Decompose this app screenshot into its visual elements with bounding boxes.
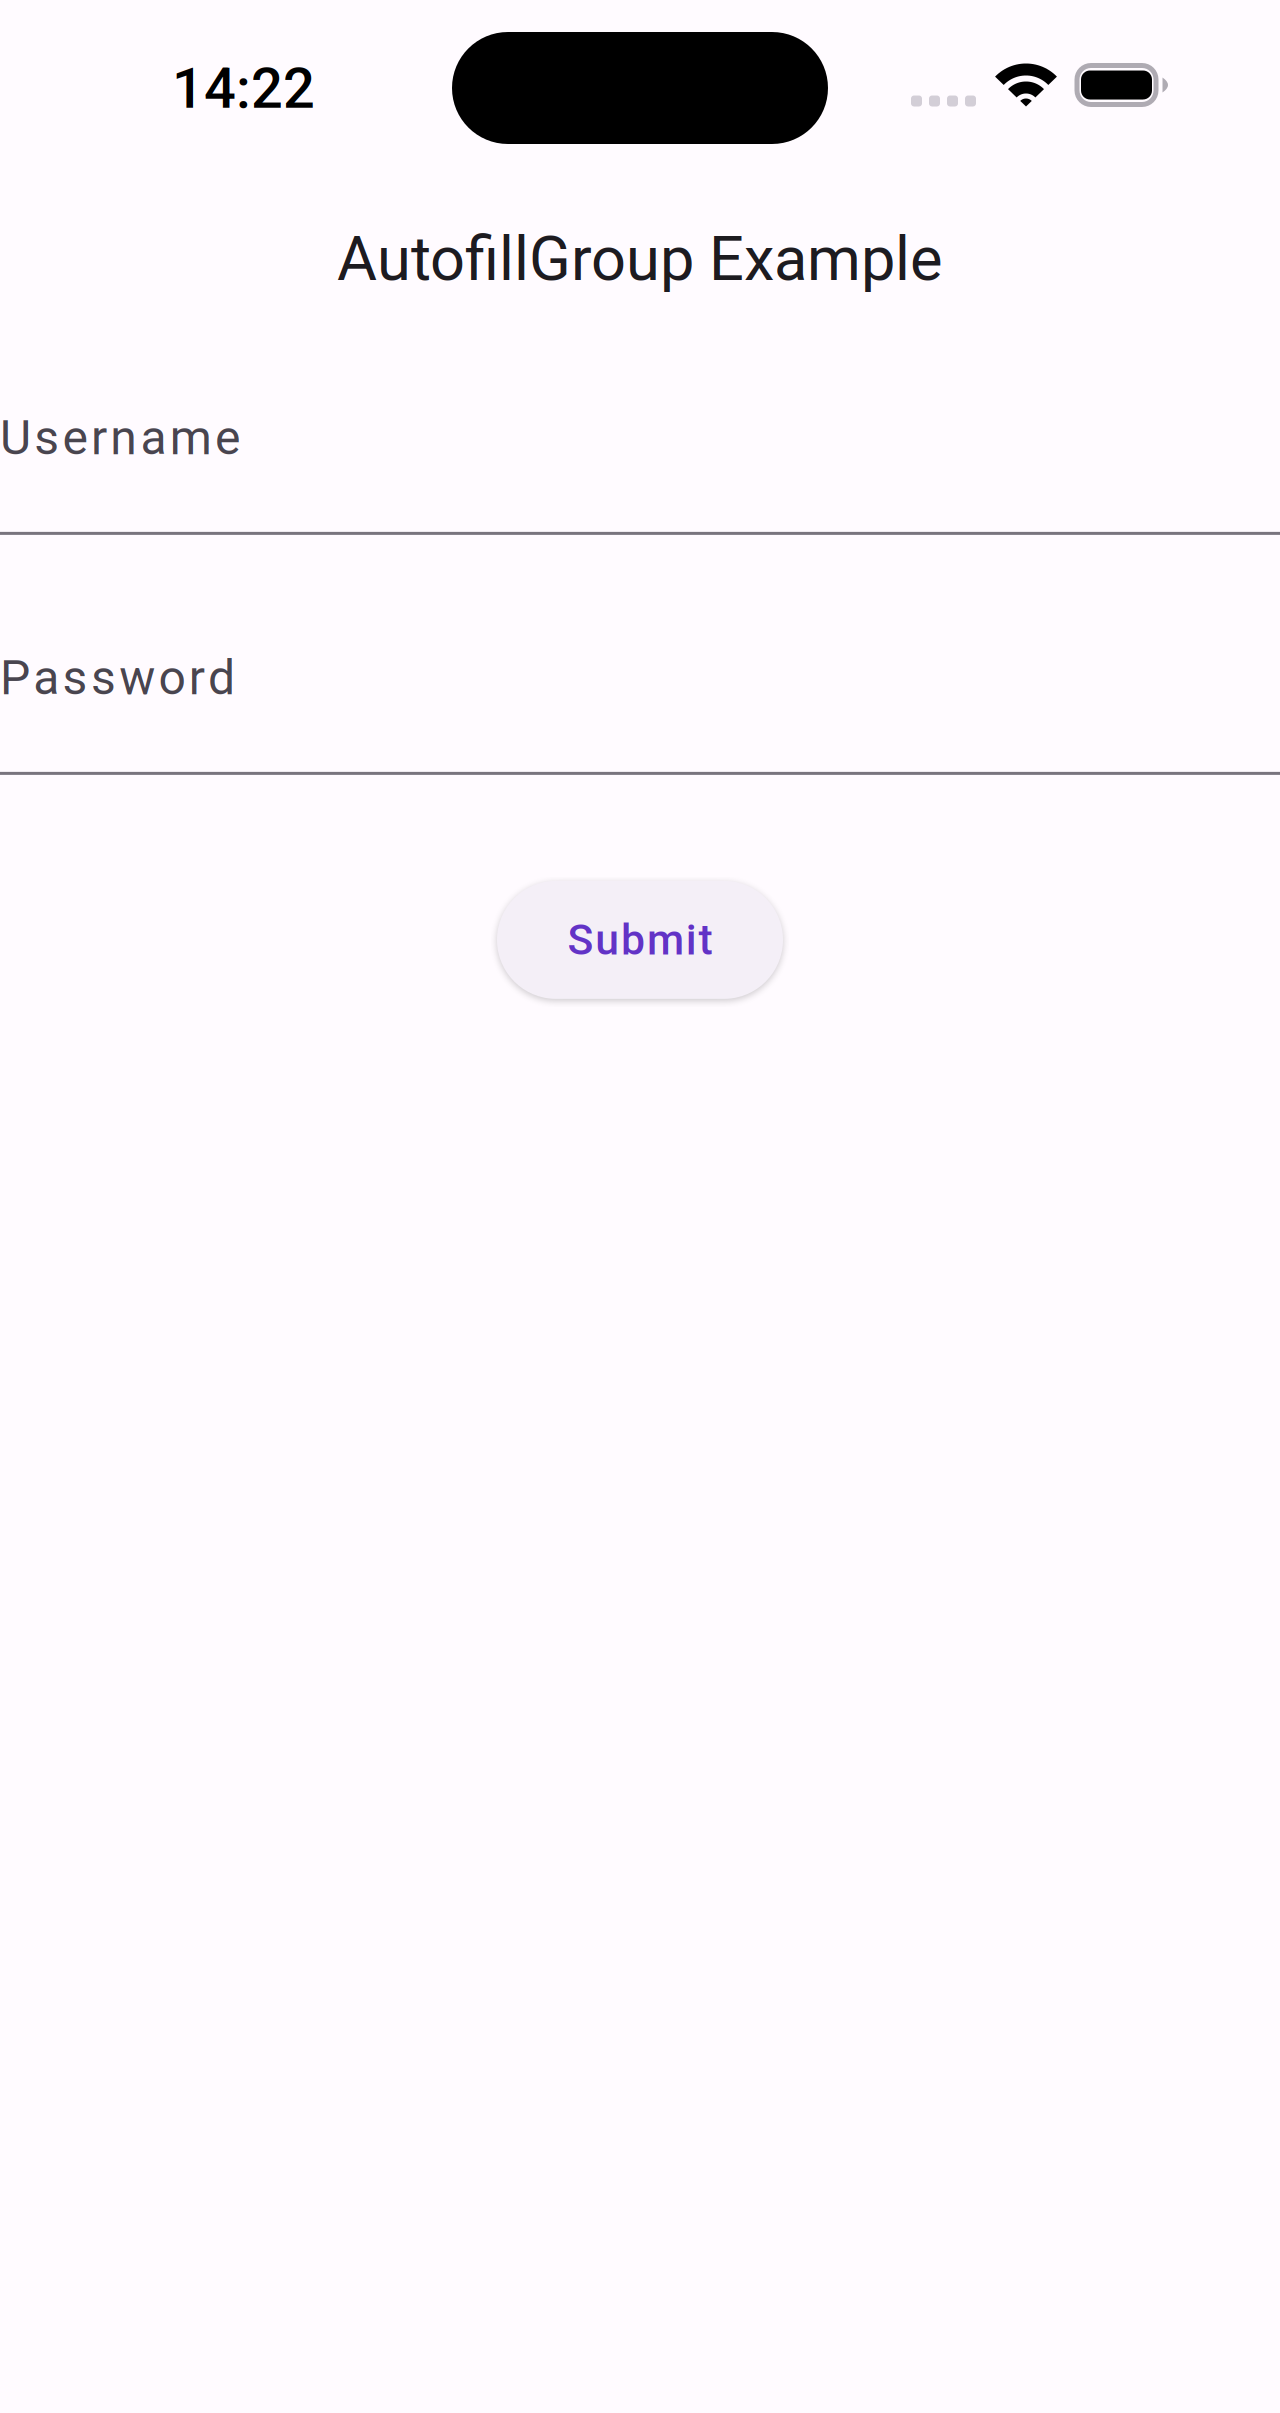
button[interactable]: Username (0, 421, 1280, 535)
staticText: 14:22 (172, 56, 315, 121)
button[interactable]: Submit (497, 881, 783, 999)
button[interactable]: Password (0, 661, 1280, 775)
staticText: AutofillGroup Example (337, 223, 943, 295)
staticText: Submit (567, 915, 712, 965)
staticText: Password (0, 650, 235, 706)
staticText: Username (0, 410, 240, 466)
